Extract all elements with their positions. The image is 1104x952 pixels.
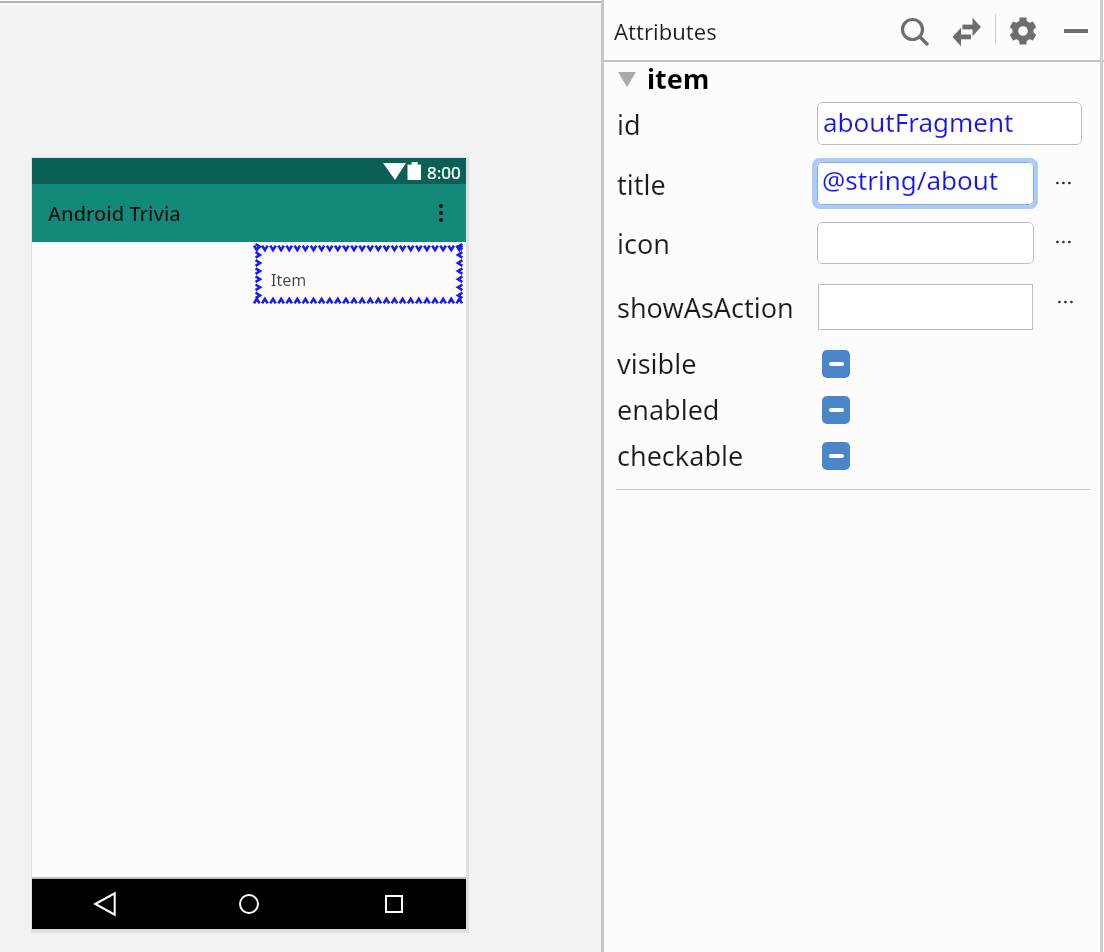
button[interactable]: Back	[82, 882, 126, 926]
button[interactable]	[818, 284, 1033, 330]
button[interactable]: More options	[1051, 288, 1081, 316]
button[interactable]: More options	[427, 199, 455, 227]
button[interactable]: Home	[227, 882, 271, 926]
button[interactable]: enabled	[822, 396, 850, 424]
button[interactable]: Item	[254, 244, 464, 305]
staticText: icon	[617, 225, 670, 262]
button[interactable]: Search	[893, 10, 934, 51]
button[interactable]: Minimize	[1056, 12, 1096, 50]
staticText: aboutFragment	[823, 104, 1014, 139]
staticText: showAsAction	[617, 289, 794, 326]
staticText: enabled	[617, 391, 720, 428]
button[interactable]: More options	[1049, 169, 1079, 197]
button[interactable]: Recents	[372, 882, 416, 926]
button[interactable]	[817, 222, 1034, 264]
staticText: Android Trivia	[48, 200, 181, 227]
staticText: id	[617, 106, 641, 143]
staticText: title	[617, 166, 666, 203]
staticText: visible	[617, 345, 697, 382]
button[interactable]: aboutFragment	[817, 102, 1082, 145]
button[interactable]: item	[604, 60, 1104, 98]
button[interactable]: Settings	[1003, 11, 1043, 51]
staticText: Item	[271, 269, 307, 291]
button[interactable]: @string/about	[817, 162, 1034, 205]
button[interactable]: visible	[822, 350, 850, 378]
button[interactable]: More options	[1049, 228, 1079, 256]
staticText: checkable	[617, 437, 744, 474]
button[interactable]: checkable	[822, 442, 850, 470]
staticText: item	[647, 60, 710, 97]
staticText: 8:00	[427, 161, 461, 184]
staticText: Attributes	[614, 16, 717, 46]
staticText: @string/about	[822, 162, 999, 197]
button[interactable]: Toggle attribute view	[944, 11, 986, 49]
